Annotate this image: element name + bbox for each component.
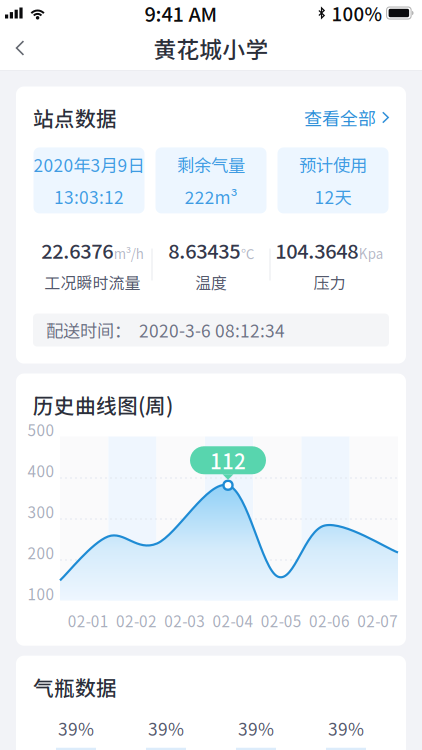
staticText: 112 [210, 445, 246, 475]
staticText: 02-03 [164, 609, 205, 632]
staticText: 工况瞬时流量 [44, 270, 140, 294]
staticText: 02-07 [357, 609, 398, 632]
staticText: 100 [27, 582, 54, 605]
staticText: 站点数据 [33, 102, 117, 132]
staticText: Kpa [359, 244, 384, 263]
staticText: 22.6376 [41, 235, 113, 264]
staticText: 黄花城小学 [153, 32, 268, 64]
staticText: 9:41 AM [144, 0, 217, 27]
staticText: 气瓶数据 [33, 672, 117, 702]
button[interactable]: Back [0, 26, 40, 70]
staticText: 02-02 [116, 609, 157, 632]
staticText: 8.63435 [168, 235, 240, 264]
staticText: 39% [148, 716, 184, 741]
staticText: 预计使用 [299, 152, 367, 177]
staticText: 02-01 [68, 609, 109, 632]
staticText: 剩余气量 [177, 152, 245, 177]
staticText: 压力 [313, 270, 345, 294]
staticText: 39% [238, 716, 274, 741]
staticText: 200 [27, 541, 54, 564]
staticText: 400 [27, 459, 54, 482]
staticText: 02-06 [309, 609, 350, 632]
staticText: 222m³ [184, 184, 237, 209]
staticText: 13:03:12 [54, 184, 124, 209]
button[interactable]: 查看全部 [304, 104, 389, 130]
staticText: 2020年3月9日 [33, 152, 144, 177]
staticText: 104.3648 [275, 235, 358, 264]
staticText: 查看全部 [304, 104, 376, 130]
staticText: 历史曲线图(周) [33, 390, 173, 419]
staticText: 300 [27, 500, 54, 523]
staticText: m³/h [114, 244, 144, 263]
staticText: 500 [27, 418, 54, 441]
staticText: ℃ [241, 244, 254, 263]
staticText: 39% [58, 716, 94, 741]
staticText: 温度 [195, 270, 227, 294]
staticText: 02-05 [261, 609, 302, 632]
staticText: 12天 [314, 184, 351, 209]
staticText: 02-04 [212, 609, 253, 632]
staticText: 配送时间： 2020-3-6 08:12:34 [46, 317, 285, 343]
staticText: 39% [328, 716, 364, 741]
staticText: 100% [332, 0, 383, 26]
